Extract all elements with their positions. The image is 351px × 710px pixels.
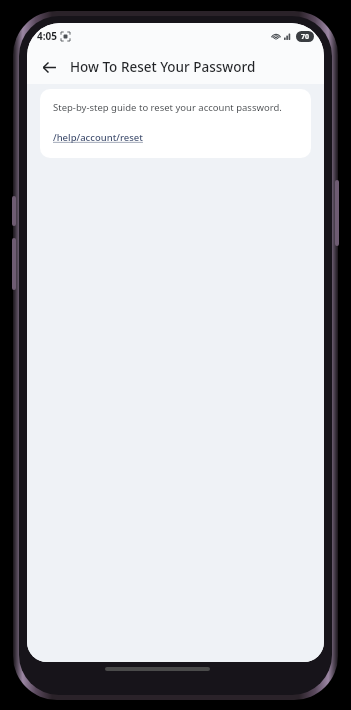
staticText: Step-by-step guide to reset your account… bbox=[53, 101, 282, 114]
button[interactable]: Step-by-step guide to reset your account… bbox=[40, 89, 311, 158]
staticText: How To Reset Your Password bbox=[70, 58, 256, 76]
staticText: /help/account/reset bbox=[53, 131, 143, 144]
button[interactable]: /help/account/reset bbox=[53, 131, 143, 144]
staticText: 4:05 bbox=[37, 29, 57, 43]
staticText: 70 bbox=[301, 32, 310, 42]
button[interactable]: Back bbox=[35, 53, 63, 81]
